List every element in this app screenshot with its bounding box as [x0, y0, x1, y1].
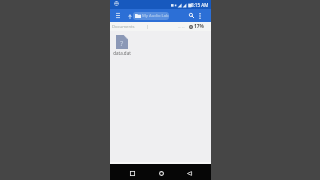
button[interactable]: Search [186, 10, 197, 21]
button[interactable]: My Audio Lab [133, 12, 169, 20]
staticText: ? [120, 38, 124, 48]
button[interactable]: Navigation menu [112, 10, 123, 21]
staticText: 17% [194, 23, 204, 30]
button[interactable]: More options [195, 11, 205, 21]
button[interactable]: Up [126, 12, 134, 20]
button[interactable]: Recents [125, 165, 139, 179]
staticText: Documents [112, 24, 135, 30]
staticText: 8:15 AM [191, 2, 209, 8]
staticText: My Audio Lab [142, 13, 169, 19]
button[interactable]: Home [154, 165, 168, 179]
staticText: -- -- [178, 24, 185, 30]
button[interactable]: Back [182, 165, 196, 179]
button[interactable]: ? [110, 35, 133, 56]
staticText: data.dat [113, 50, 131, 56]
